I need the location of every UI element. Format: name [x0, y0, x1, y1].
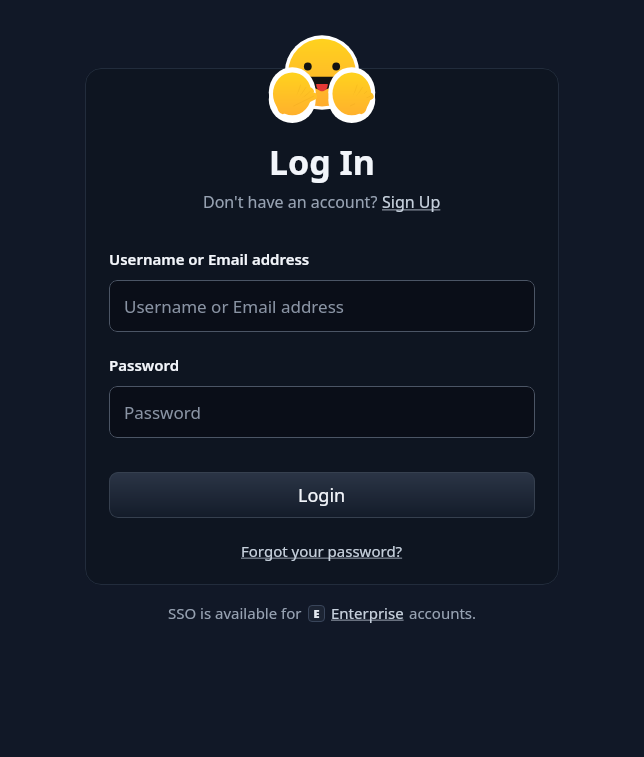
other: Hugging Face logo — [273, 28, 371, 126]
staticText: Login — [298, 483, 346, 508]
staticText: Don't have an account? — [203, 191, 382, 213]
staticText: Enterprise — [331, 603, 404, 623]
other: Enterprise badge — [308, 605, 325, 622]
staticText: Log In — [269, 139, 375, 185]
staticText: Forgot your password? — [241, 541, 403, 561]
button[interactable]: Username or Email address — [109, 280, 535, 332]
staticText: E — [313, 606, 320, 621]
staticText: Username or Email address — [109, 249, 310, 269]
staticText: Password — [109, 355, 180, 375]
staticText: Password — [124, 401, 201, 424]
staticText: accounts. — [409, 603, 477, 623]
staticText: Username or Email address — [124, 295, 344, 318]
staticText: SSO is available for — [168, 603, 302, 623]
button[interactable]: Enterprise — [331, 603, 404, 623]
button[interactable]: Forgot your password? — [241, 541, 403, 561]
button[interactable]: Sign Up — [382, 191, 441, 213]
button[interactable]: Login — [109, 472, 535, 518]
button[interactable]: Password — [109, 386, 535, 438]
staticText: Sign Up — [382, 191, 441, 213]
